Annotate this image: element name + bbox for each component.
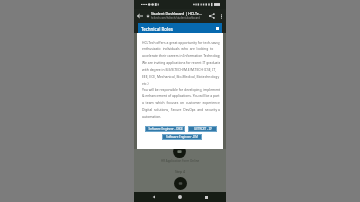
- button[interactable]: Play: [174, 177, 187, 190]
- button[interactable]: Back: [135, 11, 145, 21]
- button[interactable]: Back: [148, 192, 160, 202]
- button[interactable]: Software Engineer - DIGI: [145, 126, 185, 132]
- staticText: Software Engineer -DM: [166, 135, 198, 139]
- staticText: You will be responsible for developing, …: [142, 87, 220, 119]
- button[interactable]: Video: [173, 149, 186, 158]
- staticText: HR Application Form Online: [161, 159, 200, 163]
- button[interactable]: Software Engineer -DM: [162, 134, 202, 140]
- button[interactable]: Share: [207, 11, 217, 21]
- button[interactable]: More options: [217, 12, 225, 20]
- staticText: HCLTech offers a great opportunity for t…: [142, 40, 220, 86]
- staticText: Student Dashboard | HCLTe...: [151, 11, 202, 16]
- staticText: Step 4: [175, 169, 185, 174]
- button[interactable]: Technical Roles: [138, 23, 222, 34]
- button[interactable]: Recent apps: [200, 192, 212, 202]
- staticText: GETROIT - ZF: [194, 127, 212, 131]
- staticText: hcltech.com/hcltech/student-dashboard: [151, 16, 200, 20]
- button[interactable]: GETROIT - ZF: [188, 126, 217, 132]
- button[interactable]: Home: [174, 192, 186, 202]
- staticText: Software Engineer - DIGI: [148, 127, 183, 131]
- staticText: Technical Roles: [141, 26, 173, 32]
